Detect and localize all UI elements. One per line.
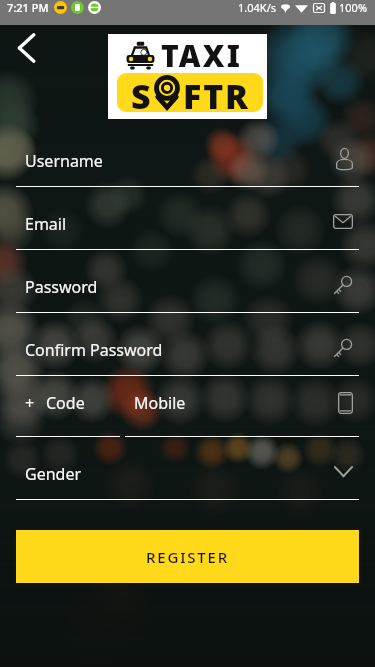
staticText: Confirm Password (25, 339, 163, 361)
button[interactable]: Username (0, 124, 375, 187)
button[interactable]: Gender (0, 437, 375, 500)
staticText: Gender (25, 463, 82, 485)
staticText: Code (46, 392, 85, 414)
staticText: 100% (339, 0, 368, 15)
button[interactable]: Email (0, 187, 375, 250)
staticText: TAXI (161, 35, 243, 76)
staticText: 7:21 PM (7, 0, 49, 15)
staticText: FTR (183, 73, 250, 111)
button[interactable]: Password (0, 250, 375, 313)
staticText: S (131, 73, 151, 111)
button[interactable]: REGISTER (16, 530, 359, 583)
button[interactable]: Back (4, 26, 48, 70)
button[interactable]: + (16, 376, 120, 437)
staticText: Email (25, 213, 67, 235)
staticText: REGISTER (146, 547, 229, 567)
staticText: 1.04K/s (238, 0, 276, 15)
button[interactable]: Confirm Password (0, 313, 375, 376)
staticText: Password (25, 276, 98, 298)
staticText: Username (25, 150, 103, 172)
staticText: + (25, 392, 35, 414)
button[interactable]: Mobile (125, 376, 359, 437)
staticText: Mobile (134, 392, 186, 414)
